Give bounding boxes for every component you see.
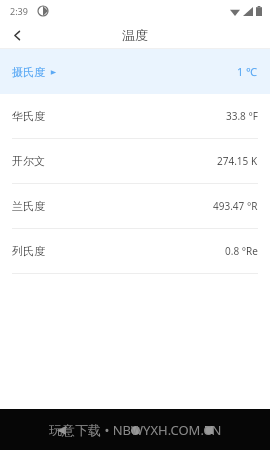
button[interactable]: Recents [198,419,220,441]
button[interactable]: 开尔文 [0,139,270,184]
staticText: 玩意下载 • NBWYXH.COM.CN [49,421,222,439]
staticText: 1 ℃ [237,64,258,79]
button[interactable]: Back [50,419,72,441]
button[interactable]: 华氏度 [0,94,270,139]
button[interactable]: 摄氏度 [0,49,270,94]
button[interactable]: 兰氏度 [0,184,270,229]
button[interactable]: Home [124,419,146,441]
staticText: 2:39 [10,5,28,17]
staticText: 华氏度 [12,109,45,123]
button[interactable]: Back [0,22,34,48]
staticText: 493.47 °R [213,199,258,213]
staticText: 列氏度 [12,244,45,258]
staticText: 33.8 °F [226,109,258,123]
button[interactable]: 列氏度 [0,229,270,274]
staticText: 274.15 K [217,154,258,168]
staticText: 开尔文 [12,154,45,168]
staticText: 温度 [122,27,148,43]
staticText: 兰氏度 [12,199,45,213]
staticText: 摄氏度 [12,65,45,79]
staticText: 0.8 °Re [225,244,258,258]
